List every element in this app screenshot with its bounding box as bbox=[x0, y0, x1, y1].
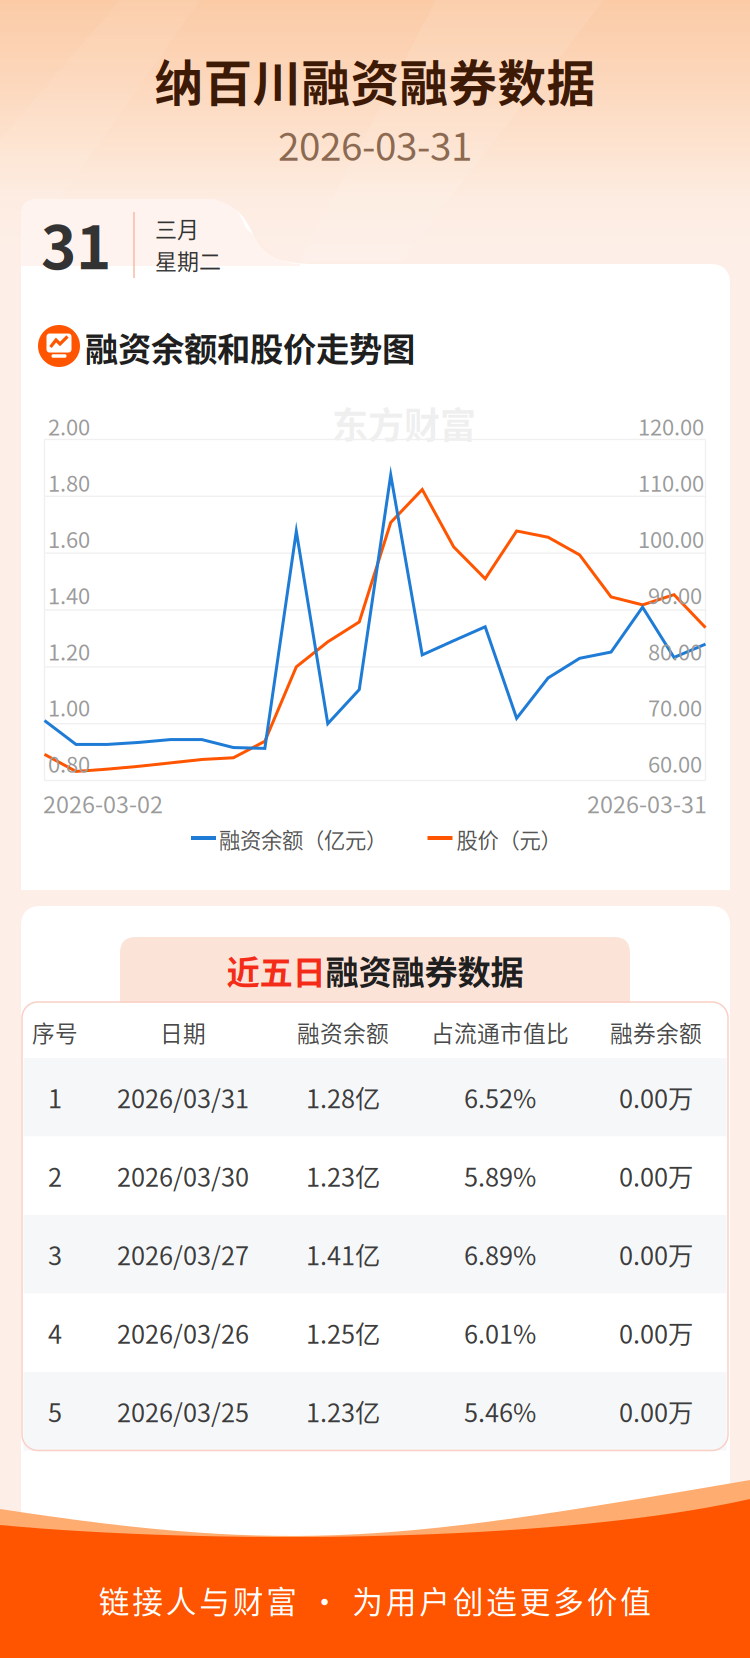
staticText: 1.00 bbox=[48, 691, 90, 723]
staticText: 1.20 bbox=[48, 635, 90, 667]
staticText: 100.00 bbox=[638, 522, 704, 554]
staticText: 股价（元） bbox=[456, 824, 561, 854]
staticText: 2026-03-02 bbox=[43, 786, 163, 820]
staticText: 70.00 bbox=[648, 691, 702, 723]
staticText: 2026/03/25 bbox=[117, 1393, 249, 1430]
staticText: 序号 bbox=[32, 1016, 78, 1048]
staticText: 6.01% bbox=[464, 1314, 536, 1351]
staticText: 1.41亿 bbox=[306, 1236, 380, 1273]
staticText: 融券余额 bbox=[610, 1016, 702, 1048]
staticText: 1.40 bbox=[48, 579, 90, 611]
staticText: 0.00万 bbox=[619, 1157, 693, 1194]
staticText: 融资余额（亿元） bbox=[219, 824, 387, 854]
staticText: 0.00万 bbox=[619, 1236, 693, 1273]
staticText: 1.25亿 bbox=[306, 1314, 380, 1351]
staticText: 2026/03/31 bbox=[117, 1079, 249, 1116]
staticText: 2026-03-31 bbox=[587, 786, 707, 820]
staticText: 融资余额和股价走势图 bbox=[85, 323, 415, 371]
staticText: 2 bbox=[48, 1157, 62, 1194]
staticText: 3 bbox=[48, 1236, 62, 1273]
staticText: 90.00 bbox=[648, 579, 702, 611]
staticText: 0.80 bbox=[48, 747, 90, 779]
staticText: 三月 bbox=[155, 212, 199, 244]
staticText: 60.00 bbox=[648, 747, 702, 779]
staticText: 80.00 bbox=[648, 635, 702, 667]
staticText: 2026/03/27 bbox=[117, 1236, 249, 1273]
staticText: 融资融券数据 bbox=[325, 946, 523, 994]
staticText: 6.52% bbox=[464, 1079, 536, 1116]
staticText: 0.00万 bbox=[619, 1314, 693, 1351]
staticText: 1.80 bbox=[48, 466, 90, 498]
staticText: 2026/03/30 bbox=[117, 1157, 249, 1194]
staticText: 纳百川融资融券数据 bbox=[154, 45, 595, 115]
staticText: 5 bbox=[48, 1393, 62, 1430]
staticText: 1.23亿 bbox=[306, 1157, 380, 1194]
staticText: 120.00 bbox=[638, 410, 704, 442]
staticText: 5.89% bbox=[464, 1157, 536, 1194]
staticText: 融资余额 bbox=[297, 1016, 389, 1048]
staticText: 占流通市值比 bbox=[431, 1016, 569, 1048]
staticText: 110.00 bbox=[638, 466, 704, 498]
staticText: 0.00万 bbox=[619, 1393, 693, 1430]
staticText: 2026/03/26 bbox=[117, 1314, 249, 1351]
staticText: 4 bbox=[48, 1314, 62, 1351]
staticText: 近五日 bbox=[226, 946, 325, 994]
staticText: 1 bbox=[48, 1079, 62, 1116]
staticText: 东方财富 bbox=[332, 397, 476, 449]
staticText: 5.46% bbox=[464, 1393, 536, 1430]
staticText: 0.00万 bbox=[619, 1079, 693, 1116]
staticText: 日期 bbox=[160, 1016, 206, 1048]
staticText: 2.00 bbox=[48, 410, 90, 442]
staticText: 31 bbox=[41, 200, 111, 286]
staticText: 1.28亿 bbox=[306, 1079, 380, 1116]
staticText: 1.23亿 bbox=[306, 1393, 380, 1430]
staticText: 1.60 bbox=[48, 522, 90, 554]
staticText: 2026-03-31 bbox=[278, 116, 472, 172]
staticText: 6.89% bbox=[464, 1236, 536, 1273]
staticText: 星期二 bbox=[155, 244, 221, 276]
staticText: 链接人与财富 · 为用户创造更多价值 bbox=[99, 1578, 651, 1622]
